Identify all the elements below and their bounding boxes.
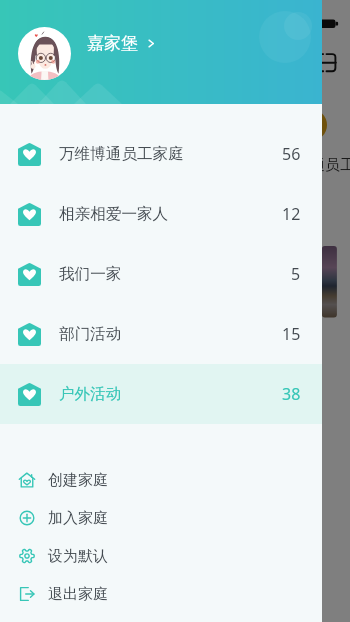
staticText: 部门活动 xyxy=(59,324,122,344)
staticText: 设为默认 xyxy=(48,547,108,566)
staticText: 加入家庭 xyxy=(48,509,108,528)
button[interactable]: 部门活动 xyxy=(0,304,322,364)
staticText: 相亲相爱一家人 xyxy=(59,204,169,224)
button[interactable]: 创建家庭 xyxy=(0,461,322,499)
staticText: 万维博通员工家庭 xyxy=(59,144,184,164)
button[interactable]: 嘉家堡 xyxy=(87,33,157,54)
staticText: 嘉家堡 xyxy=(87,33,138,54)
staticText: 户外活动 xyxy=(59,384,122,404)
staticText: 38 xyxy=(282,383,301,405)
staticText: 我们一家 xyxy=(59,264,122,284)
button[interactable]: 加入家庭 xyxy=(0,499,322,537)
button[interactable]: 设为默认 xyxy=(0,537,322,575)
button[interactable] xyxy=(0,0,350,622)
staticText: 15 xyxy=(282,323,301,345)
staticText: 56 xyxy=(282,143,301,165)
staticText: 创建家庭 xyxy=(48,471,108,490)
button[interactable]: 退出家庭 xyxy=(0,575,322,613)
button[interactable]: 万维博通员工家庭 xyxy=(0,124,322,184)
button[interactable]: 我们一家 xyxy=(0,244,322,304)
staticText: 12 xyxy=(282,203,301,225)
button[interactable]: 相亲相爱一家人 xyxy=(0,184,322,244)
staticText: 5 xyxy=(291,263,301,285)
button[interactable]: 户外活动 xyxy=(0,364,322,424)
button[interactable]: Profile avatar xyxy=(18,27,71,80)
staticText: 退出家庭 xyxy=(48,585,108,604)
staticText: 万维博通员工家庭 xyxy=(265,156,350,175)
